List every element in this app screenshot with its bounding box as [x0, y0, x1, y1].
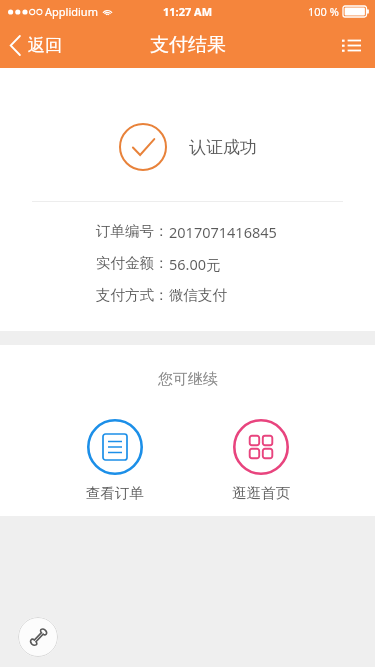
staticText: 2017071416845 [169, 222, 277, 242]
staticText: 您可继续 [158, 370, 218, 389]
staticText: 支付结果 [150, 33, 226, 57]
staticText: 认证成功 [189, 137, 257, 158]
button[interactable]: Call [18, 617, 58, 657]
button[interactable]: 返回 [0, 22, 74, 68]
button[interactable]: 查看订单 [82, 417, 148, 504]
staticText: 订单编号： [96, 222, 169, 240]
staticText: 返回 [28, 35, 62, 56]
staticText: 56.00元 [169, 254, 221, 274]
staticText: 查看订单 [86, 484, 144, 502]
staticText: Applidium [45, 4, 98, 19]
staticText: 支付方式： [96, 286, 169, 304]
button[interactable]: Menu [328, 22, 375, 68]
staticText: 11:27 AM [163, 4, 213, 19]
staticText: 实付金额： [96, 254, 169, 272]
button[interactable]: 逛逛首页 [228, 417, 294, 504]
staticText: 微信支付 [169, 286, 227, 304]
staticText: 逛逛首页 [232, 484, 290, 502]
staticText: 100 % [308, 4, 339, 19]
